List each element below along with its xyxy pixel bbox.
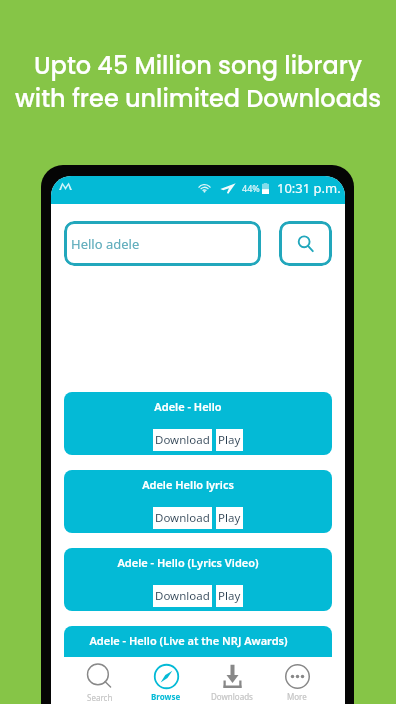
button[interactable]: Browse — [133, 657, 199, 702]
button[interactable]: Adele - Hello (Lyrics Video) — [64, 548, 332, 611]
button[interactable]: Search — [279, 221, 332, 266]
staticText: Adele Hello lyrics — [142, 477, 234, 492]
staticText: Download — [155, 432, 210, 448]
button[interactable]: Play — [216, 507, 243, 529]
staticText: Play — [218, 588, 241, 604]
staticText: Hello adele — [71, 235, 140, 253]
staticText: Search — [87, 692, 113, 703]
button[interactable]: Adele - Hello — [64, 392, 332, 455]
staticText: Adele - Hello (Lyrics Video) — [117, 555, 259, 570]
button[interactable]: Search — [67, 657, 133, 703]
staticText: Download — [155, 588, 210, 604]
staticText: Play — [218, 432, 241, 448]
staticText: Download — [155, 666, 210, 682]
staticText: 10:31 p.m. — [277, 179, 341, 197]
button[interactable]: Download — [153, 585, 212, 607]
button[interactable]: Download — [153, 663, 212, 685]
button[interactable]: Play — [216, 429, 243, 451]
button[interactable]: Download — [153, 429, 212, 451]
button[interactable]: Play — [216, 663, 243, 685]
button[interactable]: Hello adele — [64, 221, 261, 266]
staticText: Downloads — [211, 691, 253, 702]
button[interactable]: Download — [153, 507, 212, 529]
staticText: Play — [218, 510, 241, 526]
button[interactable]: Downloads — [199, 657, 265, 702]
staticText: Adele - Hello (Live at the NRJ Awards) — [89, 633, 288, 648]
staticText: Download — [155, 510, 210, 526]
staticText: Browse — [151, 691, 181, 702]
button[interactable]: Adele - Hello (Live at the NRJ Awards) — [64, 626, 332, 689]
staticText: Play — [218, 666, 241, 682]
staticText: 44% — [242, 182, 260, 194]
button[interactable]: More — [265, 657, 329, 702]
staticText: More — [287, 691, 307, 702]
staticText: Upto 45 Million song library with free u… — [15, 49, 381, 116]
button[interactable]: Adele Hello lyrics — [64, 470, 332, 533]
button[interactable]: Play — [216, 585, 243, 607]
staticText: Adele - Hello — [154, 399, 222, 414]
